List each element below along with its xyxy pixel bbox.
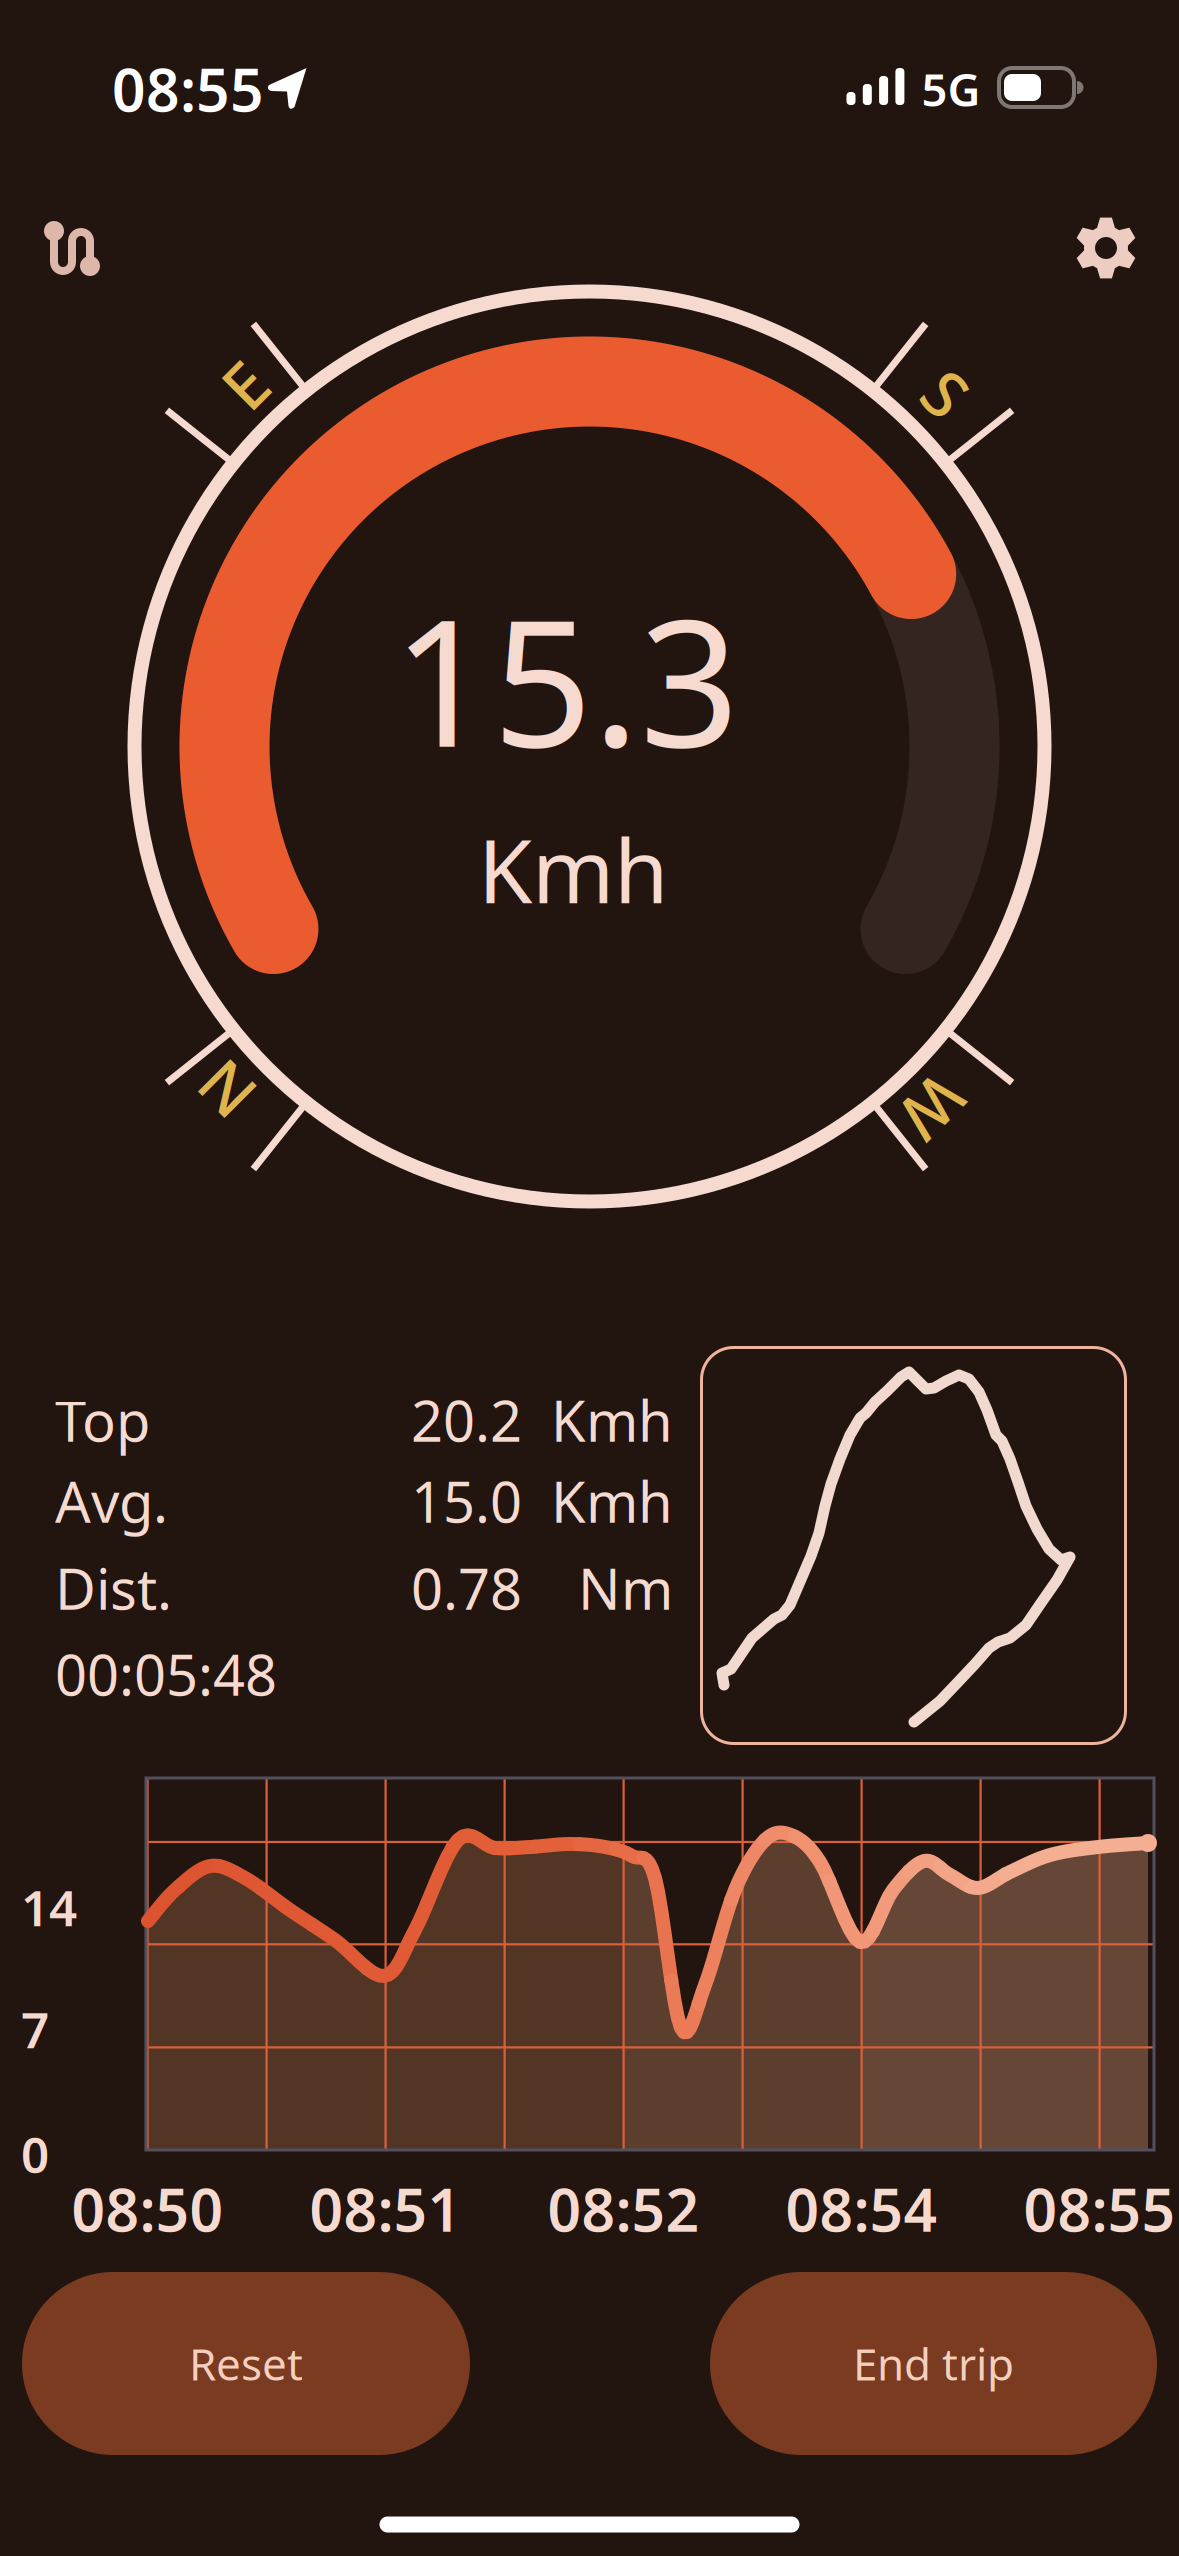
button[interactable]: Reset <box>22 2272 470 2455</box>
staticText: 5G <box>921 59 980 119</box>
staticText: E <box>227 342 263 427</box>
staticText: Kmh <box>551 1464 673 1538</box>
staticText: N <box>201 1047 251 1132</box>
staticText: 7 <box>21 1996 49 2062</box>
staticText: 08:55 <box>1024 2170 1176 2248</box>
staticText: Reset <box>189 2334 303 2393</box>
staticText: 08:52 <box>548 2170 700 2248</box>
staticText: W <box>903 1065 963 1150</box>
staticText: 08:51 <box>310 2170 462 2248</box>
staticText: 08:54 <box>786 2170 938 2248</box>
staticText: Dist. <box>55 1551 172 1625</box>
staticText: 08:50 <box>72 2170 224 2248</box>
staticText: Kmh <box>478 811 668 927</box>
staticText: S <box>928 350 963 435</box>
staticText: 0.78 <box>411 1551 522 1625</box>
staticText: 08:55 <box>112 50 264 128</box>
staticText: End trip <box>853 2334 1014 2393</box>
staticText: 20.2 <box>411 1383 522 1457</box>
staticText: 15.3 <box>392 563 739 795</box>
staticText: Nm <box>578 1551 673 1625</box>
staticText: Top <box>55 1383 150 1457</box>
staticText: 15.0 <box>411 1464 522 1538</box>
staticText: Avg. <box>55 1464 168 1538</box>
staticText: Kmh <box>551 1383 673 1457</box>
staticText: 0 <box>21 2121 49 2187</box>
button[interactable]: Route <box>42 219 102 279</box>
button[interactable]: Settings <box>1074 216 1138 280</box>
button[interactable]: End trip <box>710 2272 1157 2455</box>
staticText: 14 <box>21 1874 77 1940</box>
staticText: 00:05:48 <box>55 1637 277 1711</box>
